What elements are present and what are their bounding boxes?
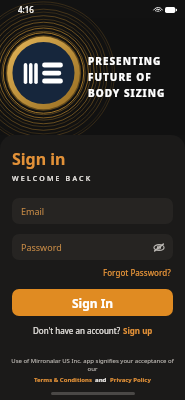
- staticText: Password: [21, 241, 62, 253]
- button[interactable]: Privacy Policy: [110, 376, 151, 384]
- button[interactable]: Sign up: [123, 325, 153, 336]
- button[interactable]: Show password: [152, 240, 166, 254]
- staticText: Sign up: [123, 325, 153, 336]
- staticText: Use of Mirronalar US Inc. app signifies …: [8, 357, 177, 373]
- staticText: 4:16: [18, 4, 34, 15]
- button[interactable]: Forgot Password?: [101, 265, 173, 280]
- staticText: Sign in: [12, 148, 66, 170]
- staticText: PRESENTING: [88, 54, 162, 68]
- button[interactable]: Sign In: [12, 289, 173, 316]
- staticText: Don't have an account?: [33, 325, 123, 336]
- staticText: Email: [21, 205, 45, 217]
- button[interactable]: Terms & Conditions: [34, 376, 92, 384]
- button[interactable]: Email: [12, 198, 173, 224]
- button[interactable]: Password: [12, 234, 173, 260]
- staticText: Sign In: [72, 295, 114, 311]
- staticText: BODY SIZING: [88, 86, 166, 100]
- staticText: Privacy Policy: [110, 376, 151, 384]
- staticText: WELCOME BACK: [12, 174, 93, 184]
- staticText: and: [92, 376, 110, 384]
- staticText: FUTURE OF: [88, 70, 152, 84]
- staticText: Forgot Password?: [103, 267, 171, 278]
- staticText: Terms & Conditions: [34, 376, 92, 384]
